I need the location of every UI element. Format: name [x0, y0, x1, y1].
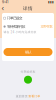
staticText: ‹ [1, 4, 4, 13]
staticText: ▮▮▮ [48, 0, 54, 4]
button[interactable]: 确认 [3, 48, 52, 56]
staticText: 返回首页 [16, 94, 28, 98]
staticText: 9:41 [2, 0, 8, 4]
staticText: 等待买家付款 [7, 24, 25, 29]
staticText: 查看订单 [28, 94, 40, 98]
button[interactable]: Back [0, 4, 6, 12]
staticText: 订单已提交 [7, 16, 22, 20]
staticText: 立即付款 [40, 24, 52, 28]
staticText: 确认 [25, 50, 31, 54]
staticText: 分享给好友 [20, 70, 35, 74]
button[interactable]: Share to WeChat [24, 76, 32, 84]
staticText: 详情 [23, 6, 33, 11]
staticText: 请在 24 小时内完成付款 [3, 30, 36, 34]
